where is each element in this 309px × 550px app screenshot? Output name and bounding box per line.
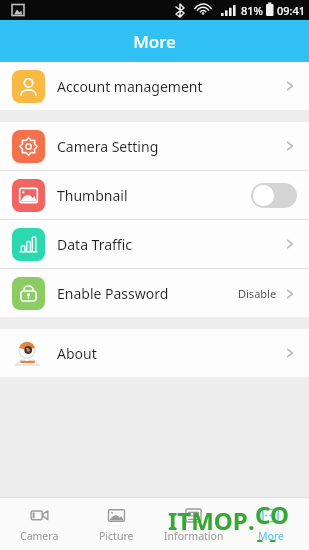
staticText: More xyxy=(133,30,176,53)
staticText: Information xyxy=(164,529,224,543)
staticText: Picture xyxy=(99,529,134,543)
staticText: Camera xyxy=(20,529,59,543)
button[interactable]: Information xyxy=(155,498,232,550)
staticText: 81% xyxy=(241,3,263,18)
staticText: About xyxy=(57,344,97,363)
staticText: . xyxy=(248,504,255,537)
staticText: Account management xyxy=(57,77,203,96)
staticText: Disable xyxy=(238,286,277,301)
button[interactable]: Data Traffic xyxy=(0,220,309,269)
staticText: More xyxy=(258,529,284,543)
staticText: ITMOP xyxy=(168,504,248,537)
button[interactable]: Camera xyxy=(0,498,78,550)
button[interactable]: Thumbnail xyxy=(0,171,309,220)
staticText: Thumbnail xyxy=(57,186,128,205)
button[interactable]: More xyxy=(232,498,309,550)
button[interactable]: Camera Setting xyxy=(0,122,309,171)
button[interactable]: About xyxy=(0,329,309,377)
staticText: Data Traffic xyxy=(57,235,133,254)
staticText: Enable Password xyxy=(57,284,169,303)
button[interactable]: Thumbnail toggle xyxy=(251,183,297,208)
staticText: Camera Setting xyxy=(57,137,159,156)
button[interactable]: Enable Password xyxy=(0,269,309,317)
button[interactable]: Account management xyxy=(0,62,309,110)
button[interactable]: Picture xyxy=(78,498,155,550)
staticText: COM xyxy=(255,498,309,542)
staticText: 09:41 xyxy=(277,3,306,18)
